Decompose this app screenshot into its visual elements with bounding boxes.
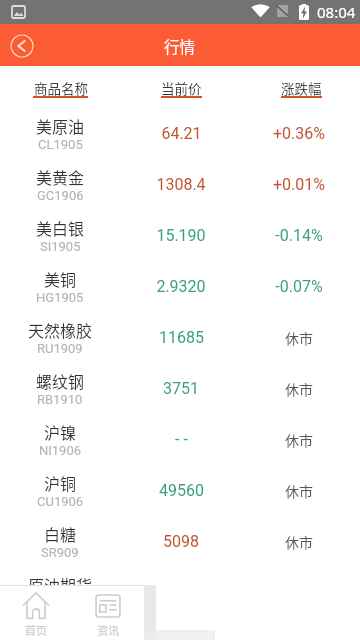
staticText: -0.14% (275, 226, 323, 245)
staticText: 1308.4 (156, 175, 206, 194)
button[interactable]: 美白银 (0, 210, 360, 261)
staticText: GC1906 (37, 188, 84, 203)
button[interactable]: 美铜 (0, 261, 360, 312)
button[interactable]: 首页 (0, 585, 72, 640)
staticText: 原油期货 (28, 573, 93, 596)
staticText: 商品名称 (34, 78, 88, 98)
staticText: CU1906 (37, 494, 84, 509)
staticText: 沪镍 (44, 420, 77, 443)
button[interactable]: Back (10, 34, 34, 58)
button[interactable]: 白糖 (0, 516, 360, 567)
button[interactable]: 天然橡胶 (0, 312, 360, 363)
staticText: 49560 (159, 481, 204, 500)
staticText: SR909 (41, 545, 79, 560)
staticText: 美黄金 (36, 165, 85, 188)
staticText: 天然橡胶 (28, 318, 93, 341)
button[interactable]: 美原油 (0, 108, 360, 159)
button[interactable]: 螺纹钢 (0, 363, 360, 414)
staticText: CL1905 (38, 137, 83, 152)
button[interactable]: 美黄金 (0, 159, 360, 210)
staticText: SI1905 (40, 239, 81, 254)
staticText: 美白银 (36, 216, 85, 239)
button[interactable]: 资讯 (72, 585, 144, 640)
staticText: 休市 (285, 532, 313, 552)
staticText: NI1906 (39, 443, 82, 458)
staticText: RB1910 (37, 392, 83, 407)
button[interactable]: 沪镍 (0, 414, 360, 465)
button[interactable]: 沪铜 (0, 465, 360, 516)
staticText: 螺纹钢 (36, 369, 85, 392)
staticText: 白糖 (44, 522, 77, 545)
staticText: 11685 (159, 328, 204, 347)
staticText: 3751 (163, 379, 199, 398)
staticText: 美原油 (36, 114, 85, 137)
staticText: 美铜 (44, 267, 77, 290)
staticText: SC1906 (37, 596, 83, 611)
staticText: 资讯 (97, 622, 119, 638)
staticText: +0.36% (273, 124, 325, 143)
staticText: 5098 (163, 532, 199, 551)
staticText: 涨跌幅 (281, 78, 322, 98)
staticText: +0.01% (273, 175, 325, 194)
staticText: 休市 (285, 328, 313, 348)
staticText: 休市 (285, 430, 313, 450)
staticText: 当前价 (161, 78, 202, 98)
button[interactable]: 原油期货 (0, 567, 360, 618)
staticText: 2.9320 (156, 277, 206, 296)
staticText: 首页 (25, 622, 47, 638)
staticText: 15.190 (156, 226, 206, 245)
staticText: 08:04 (317, 2, 356, 22)
staticText: HG1905 (36, 290, 84, 305)
staticText: 64.21 (161, 124, 202, 143)
staticText: RU1909 (37, 341, 83, 356)
staticText: 休市 (285, 481, 313, 501)
staticText: 行情 (164, 35, 196, 57)
staticText: 休市 (285, 379, 313, 399)
staticText: -0.07% (275, 277, 323, 296)
staticText: - - (175, 430, 188, 449)
staticText: 沪铜 (44, 471, 77, 494)
